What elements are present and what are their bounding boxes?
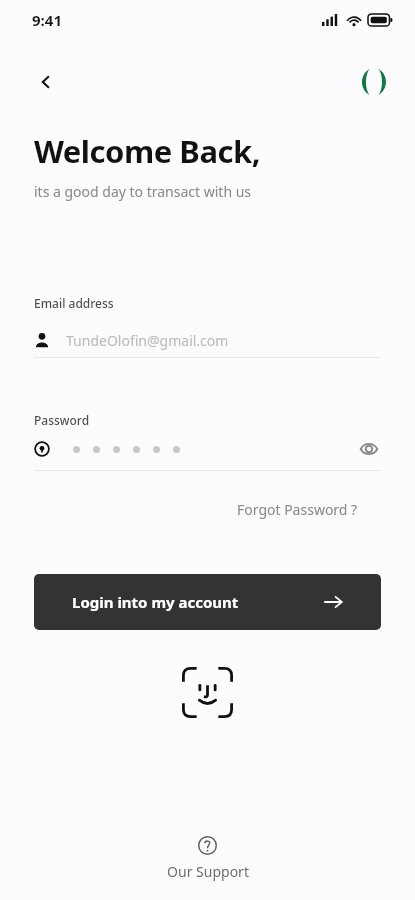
staticText: Email address — [34, 295, 114, 311]
staticText: TundeOlofin@gmail.com — [66, 331, 229, 350]
button[interactable]: Back — [28, 64, 64, 100]
staticText: Welcome Back, — [34, 130, 260, 172]
button[interactable]: TundeOlofin@gmail.com — [34, 323, 381, 357]
button[interactable]: Login into my account — [34, 574, 381, 630]
button[interactable]: Forgot Password ? — [231, 496, 364, 523]
staticText: 9:41 — [32, 10, 62, 30]
button[interactable]: Our Support — [0, 836, 415, 881]
button[interactable]: Show password — [357, 437, 381, 461]
staticText: Our Support — [167, 862, 249, 881]
staticText: Login into my account — [72, 592, 239, 612]
button[interactable]: Face ID login — [182, 667, 233, 718]
button[interactable]: Show password — [34, 436, 381, 462]
staticText: its a good day to transact with us — [34, 182, 252, 201]
staticText: Password — [34, 412, 90, 428]
staticText: Forgot Password ? — [237, 500, 358, 519]
